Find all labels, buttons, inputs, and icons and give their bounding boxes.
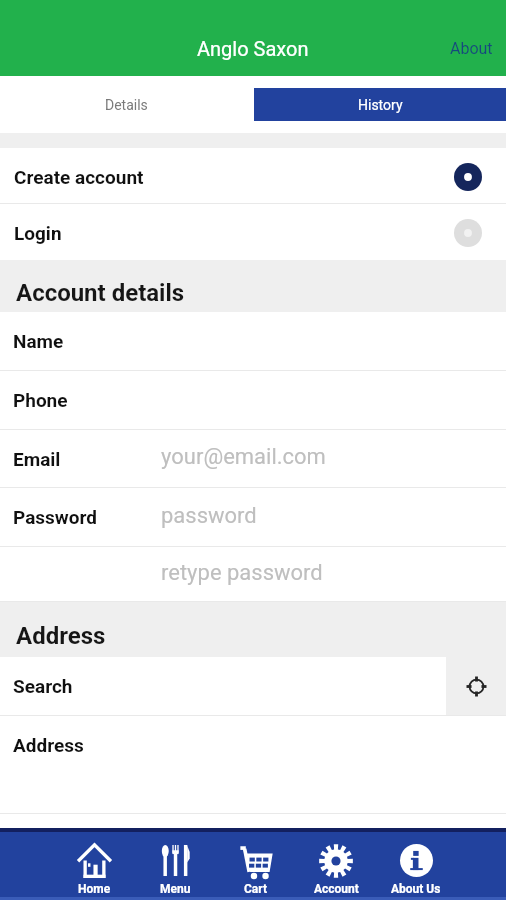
staticText: Name <box>13 330 64 352</box>
button[interactable]: About <box>434 29 506 68</box>
staticText: retype password <box>161 560 323 586</box>
staticText: Login <box>14 222 62 244</box>
staticText: Address <box>13 734 84 756</box>
button[interactable]: About Us <box>376 828 456 897</box>
staticText: Address <box>16 622 106 650</box>
staticText: Menu <box>160 882 191 896</box>
button[interactable]: Login <box>0 204 506 260</box>
button[interactable]: retype password <box>0 547 506 601</box>
button[interactable]: Create account <box>0 148 506 203</box>
staticText: Anglo Saxon <box>197 37 309 60</box>
staticText: Phone <box>13 389 68 411</box>
staticText: History <box>358 97 403 113</box>
staticText: Cart <box>244 882 268 896</box>
button[interactable]: Name <box>0 312 506 370</box>
staticText: Home <box>78 882 111 896</box>
button[interactable]: Use my location <box>446 657 506 715</box>
staticText: Account <box>314 882 359 896</box>
button[interactable]: Home <box>54 828 135 897</box>
staticText: Create account <box>14 166 144 188</box>
staticText: About Us <box>391 882 441 896</box>
staticText: Search <box>13 675 73 697</box>
staticText: Details <box>105 97 148 113</box>
staticText: Email <box>13 448 61 470</box>
button[interactable]: Account <box>296 828 376 897</box>
staticText: Account details <box>16 279 185 307</box>
button[interactable]: Menu <box>135 828 216 897</box>
staticText: password <box>161 503 257 529</box>
staticText: your@email.com <box>161 444 326 470</box>
button[interactable]: Search <box>0 657 446 715</box>
staticText: Password <box>13 506 97 528</box>
button[interactable]: History <box>254 88 506 121</box>
staticText: About <box>450 39 493 58</box>
button[interactable]: Email <box>0 430 506 487</box>
button[interactable]: Password <box>0 488 506 546</box>
button[interactable]: Address <box>0 716 506 773</box>
button[interactable]: Details <box>0 76 253 133</box>
button[interactable]: Phone <box>0 371 506 429</box>
button[interactable]: Cart <box>216 828 296 897</box>
